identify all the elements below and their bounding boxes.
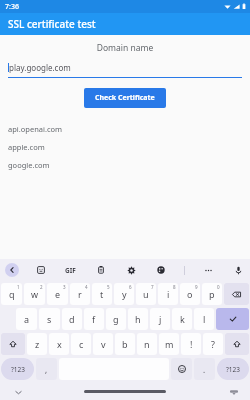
staticText: Check Certificate xyxy=(95,93,155,103)
button[interactable]: Shift xyxy=(1,333,25,355)
staticText: 3 xyxy=(63,284,66,290)
staticText: g xyxy=(113,313,119,325)
staticText: d xyxy=(69,313,75,325)
button[interactable]: w xyxy=(24,283,45,305)
button[interactable]: l xyxy=(194,308,214,330)
staticText: m xyxy=(165,338,174,350)
button[interactable]: play.google.com xyxy=(8,62,242,78)
staticText: o xyxy=(187,288,193,300)
staticText: u xyxy=(143,288,149,300)
staticText: r xyxy=(78,288,82,300)
button[interactable]: k xyxy=(172,308,192,330)
staticText: , xyxy=(45,364,48,375)
staticText: . xyxy=(203,364,206,375)
staticText: f xyxy=(92,313,96,325)
button[interactable]: j xyxy=(150,308,170,330)
button[interactable]: Settings xyxy=(124,263,138,277)
button[interactable]: v xyxy=(93,333,113,355)
button[interactable]: o xyxy=(180,283,200,305)
staticText: 5 xyxy=(107,284,110,290)
staticText: ! xyxy=(190,338,193,350)
staticText: y xyxy=(122,288,127,300)
staticText: b xyxy=(122,338,128,350)
staticText: i xyxy=(167,288,170,300)
button[interactable]: Sticker xyxy=(34,263,48,277)
button[interactable]: x xyxy=(49,333,69,355)
button[interactable]: f xyxy=(84,308,104,330)
button[interactable]: r xyxy=(70,283,90,305)
button[interactable]: a xyxy=(16,308,37,330)
button[interactable]: Enter xyxy=(216,308,249,330)
staticText: 1 xyxy=(17,284,20,290)
staticText: SSL certificate test xyxy=(8,17,96,31)
button[interactable]: c xyxy=(71,333,91,355)
staticText: n xyxy=(144,338,150,350)
button[interactable]: e xyxy=(47,283,68,305)
staticText: ?123 xyxy=(226,365,240,374)
staticText: 7:36 xyxy=(5,2,19,12)
button[interactable]: ?123 xyxy=(217,358,249,380)
staticText: a xyxy=(24,313,30,325)
button[interactable]: z xyxy=(27,333,47,355)
staticText: api.openai.com xyxy=(8,124,63,134)
staticText: 6 xyxy=(129,284,132,290)
button[interactable]: n xyxy=(137,333,157,355)
button[interactable]: Shift xyxy=(225,333,249,355)
button[interactable]: GIF xyxy=(63,264,78,277)
button[interactable]: y xyxy=(114,283,134,305)
staticText: Domain name xyxy=(0,42,250,54)
staticText: 8 xyxy=(173,284,176,290)
button[interactable]: i xyxy=(158,283,178,305)
staticText: 4 xyxy=(85,284,88,290)
staticText: e xyxy=(55,288,61,300)
button[interactable]: b xyxy=(115,333,135,355)
staticText: apple.com xyxy=(8,142,45,152)
staticText: t xyxy=(100,288,104,300)
button[interactable]: g xyxy=(106,308,126,330)
staticText: q xyxy=(9,288,15,300)
button[interactable]: p xyxy=(202,283,222,305)
button[interactable]: u xyxy=(136,283,156,305)
button[interactable]: Back xyxy=(5,263,19,277)
staticText: GIF xyxy=(65,266,76,275)
staticText: w xyxy=(31,288,39,300)
button[interactable]: More options xyxy=(201,263,215,277)
button[interactable]: Check Certificate xyxy=(84,88,166,108)
button[interactable]: Clipboard xyxy=(94,263,108,277)
button[interactable]: s xyxy=(39,308,60,330)
staticText: 2 xyxy=(40,284,43,290)
button[interactable]: Theme xyxy=(154,263,168,277)
staticText: play.google.com xyxy=(9,62,71,73)
staticText: l xyxy=(203,313,206,325)
button[interactable]: d xyxy=(62,308,82,330)
button[interactable]: apple.com xyxy=(0,138,250,156)
button[interactable]: Switch keyboard xyxy=(228,386,240,398)
staticText: h xyxy=(135,313,141,325)
staticText: p xyxy=(209,288,215,300)
button[interactable]: Voice input xyxy=(231,263,245,277)
staticText: 0 xyxy=(217,284,220,290)
staticText: j xyxy=(159,313,162,325)
button[interactable]: Hide keyboard xyxy=(12,386,24,398)
staticText: z xyxy=(35,338,40,350)
button[interactable]: google.com xyxy=(0,156,250,174)
staticText: x xyxy=(57,338,62,350)
button[interactable]: ?123 xyxy=(1,358,34,380)
button[interactable]: api.openai.com xyxy=(0,120,250,138)
staticText: ?123 xyxy=(11,365,25,374)
button[interactable]: ! xyxy=(181,333,201,355)
button[interactable]: . xyxy=(194,358,215,380)
staticText: v xyxy=(101,338,106,350)
staticText: 7 xyxy=(151,284,154,290)
button[interactable]: Emoji xyxy=(171,358,192,380)
button[interactable]: , xyxy=(36,358,57,380)
button[interactable]: q xyxy=(1,283,22,305)
button[interactable]: h xyxy=(128,308,148,330)
button[interactable]: ? xyxy=(203,333,223,355)
staticText: ? xyxy=(211,338,215,350)
staticText: k xyxy=(180,313,185,325)
button[interactable]: t xyxy=(92,283,112,305)
button[interactable]: Backspace xyxy=(224,283,249,305)
button[interactable]: m xyxy=(159,333,179,355)
